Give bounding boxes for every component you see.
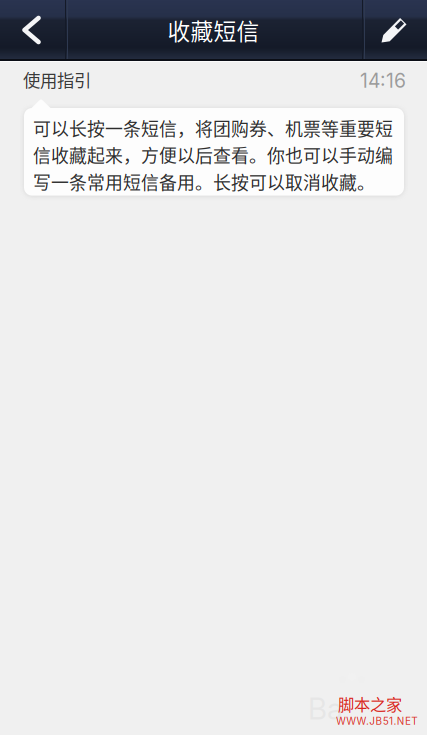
- staticText: 可以长按一条短信，将团购券、机票等重要短 信收藏起来，方便以后查看。你也可以手动…: [33, 115, 393, 195]
- staticText: 收藏短信: [167, 14, 259, 46]
- button[interactable]: Compose: [362, 0, 427, 60]
- staticText: 使用指引: [23, 67, 91, 92]
- button[interactable]: 使用指引: [0, 62, 427, 198]
- staticText: 14:16: [360, 69, 406, 92]
- staticText: WWW.JB51.NET: [336, 715, 417, 727]
- button[interactable]: Back: [0, 0, 64, 60]
- staticText: 脚本之家: [338, 692, 402, 716]
- staticText: Ba: [308, 691, 343, 726]
